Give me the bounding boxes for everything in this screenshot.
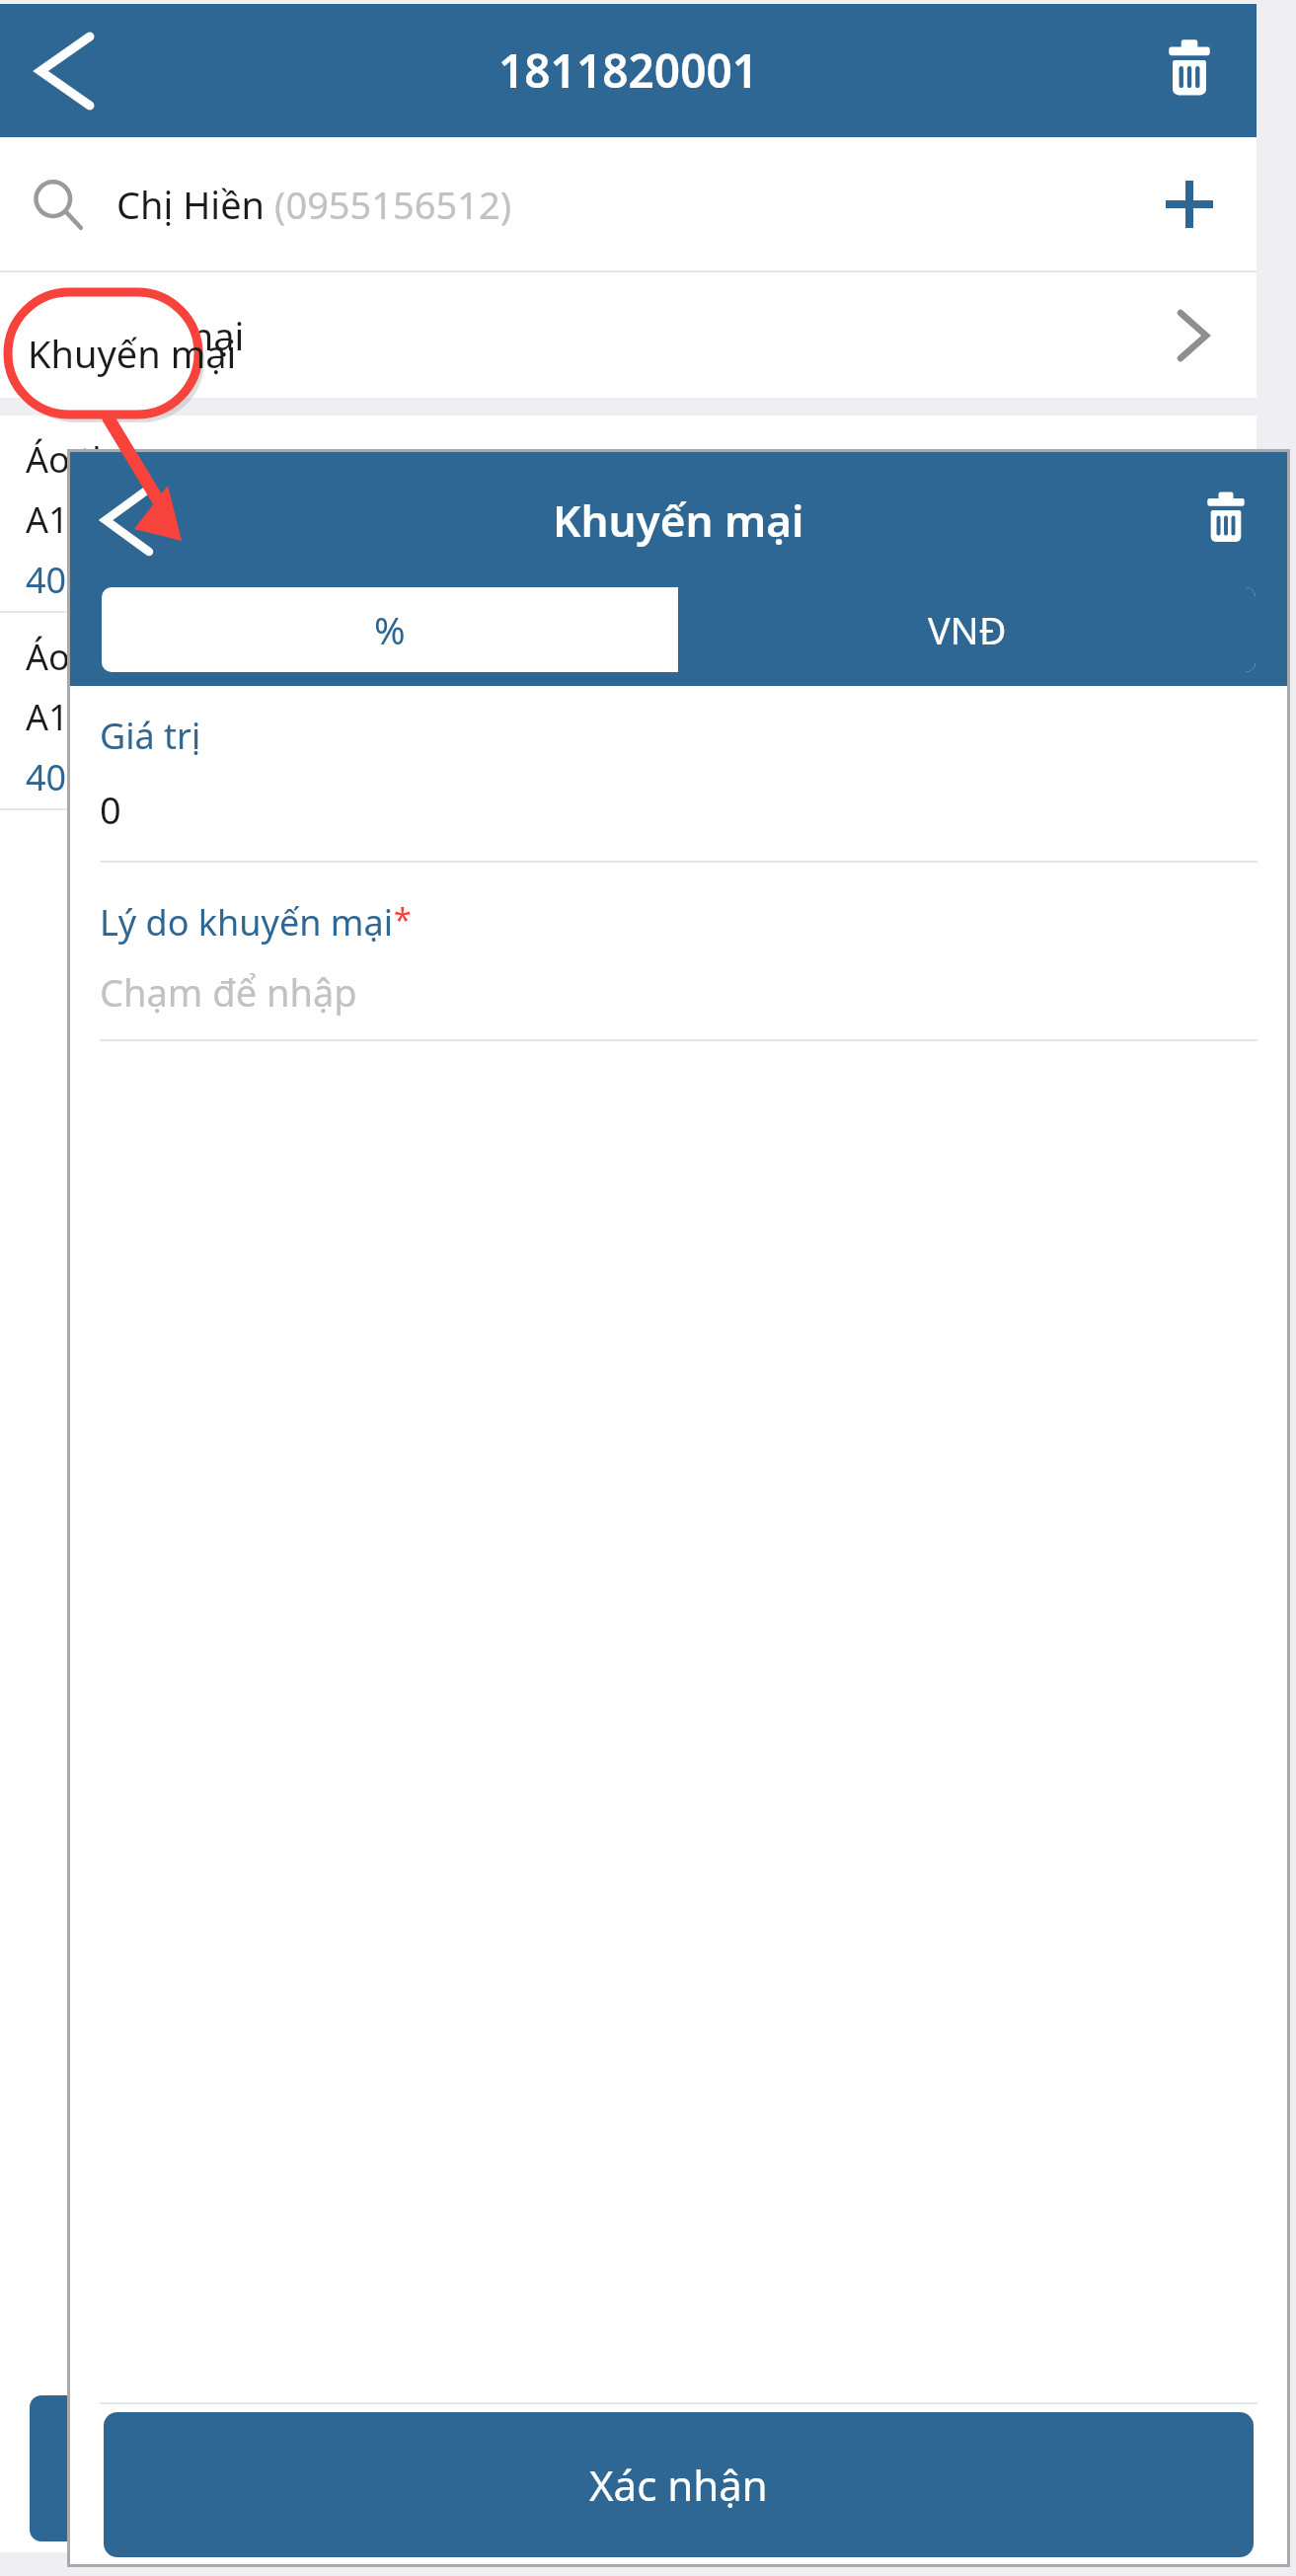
staticText: Khuyến mại: [36, 310, 245, 361]
button[interactable]: Khuyến mại: [0, 272, 1257, 398]
staticText: Xác nhận: [589, 2457, 768, 2513]
button[interactable]: Back: [80, 473, 175, 568]
staticText: Khuyến mại: [28, 328, 237, 379]
button[interactable]: Áo thun nam: [0, 613, 1257, 808]
button[interactable]: %: [102, 587, 678, 672]
staticText: Áo thun nam: [26, 435, 243, 484]
staticText: A1 x 1: [26, 495, 126, 544]
staticText: 1811820001: [498, 39, 759, 102]
button[interactable]: Delete: [1138, 20, 1241, 122]
button[interactable]: Back: [14, 20, 116, 122]
staticText: 400.000: [26, 753, 158, 801]
staticText: A1 x 1: [26, 693, 126, 741]
staticText: Lý do khuyến mại: [100, 898, 394, 947]
staticText: Khuyến mại: [553, 491, 804, 550]
button[interactable]: VNĐ: [678, 587, 1256, 672]
button[interactable]: Thanh toán: [30, 2395, 1227, 2541]
button[interactable]: 0: [70, 784, 1287, 835]
button[interactable]: Add: [1150, 165, 1229, 244]
staticText: %: [374, 604, 406, 655]
staticText: Thanh toán: [522, 2442, 735, 2495]
button[interactable]: Chị Hiền: [0, 137, 1257, 270]
staticText: VNĐ: [928, 604, 1007, 655]
staticText: (0955156512): [274, 179, 512, 230]
staticText: *: [394, 898, 412, 942]
button[interactable]: Xác nhận: [104, 2412, 1254, 2557]
button[interactable]: Chạm để nhập: [70, 966, 1287, 1018]
button[interactable]: Delete: [1179, 473, 1273, 568]
staticText: Chạm để nhập: [100, 966, 357, 1018]
staticText: 0: [100, 784, 121, 835]
staticText: Áo thun nam: [26, 633, 243, 681]
staticText: 400.000: [26, 556, 158, 604]
button[interactable]: Áo thun nam: [0, 416, 1257, 611]
staticText: Giá trị: [100, 712, 201, 760]
staticText: Chị Hiền: [116, 179, 274, 230]
